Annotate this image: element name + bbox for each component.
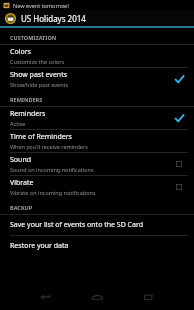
staticText: Vibrate on incoming notifications: [10, 189, 96, 196]
staticText: Show past events: [10, 70, 68, 80]
button[interactable]: Recent apps: [123, 284, 175, 310]
staticText: CUSTOMIZATION: [10, 34, 57, 41]
staticText: Sound: [10, 155, 32, 165]
button[interactable]: Sound: [0, 153, 194, 175]
button[interactable]: Checked: [172, 111, 186, 125]
button[interactable]: Unchecked: [172, 157, 186, 171]
staticText: Time of Reminders: [10, 132, 72, 142]
staticText: Restore your data: [10, 241, 69, 251]
button[interactable]: Time of Reminders: [0, 130, 194, 152]
staticText: BACKUP: [10, 204, 33, 211]
staticText: REMINDERS: [10, 96, 43, 103]
button[interactable]: Back: [19, 284, 71, 310]
button[interactable]: Vibrate: [0, 176, 194, 198]
staticText: Active: [10, 120, 26, 127]
button[interactable]: Unchecked: [172, 180, 186, 194]
button[interactable]: Checked: [172, 72, 186, 86]
staticText: Show/hide past events: [10, 81, 69, 88]
staticText: Colors: [10, 47, 31, 57]
staticText: Save your list of events onto the SD Car…: [10, 220, 143, 230]
staticText: Vibrate: [10, 178, 34, 188]
staticText: New event tomorrow!: [13, 2, 69, 9]
button[interactable]: Home: [71, 284, 123, 310]
staticText: Customize the colors: [10, 58, 65, 65]
button[interactable]: Reminders: [0, 107, 194, 129]
staticText: Reminders: [10, 109, 46, 119]
button[interactable]: Restore your data: [0, 236, 194, 256]
button[interactable]: Save your list of events onto the SD Car…: [0, 215, 194, 235]
button[interactable]: Colors: [0, 45, 194, 67]
button[interactable]: Show past events: [0, 68, 194, 90]
staticText: US Holidays 2014: [21, 13, 86, 24]
staticText: When you'll receive reminders: [10, 143, 88, 150]
staticText: Sound on incoming notifications: [10, 166, 94, 173]
